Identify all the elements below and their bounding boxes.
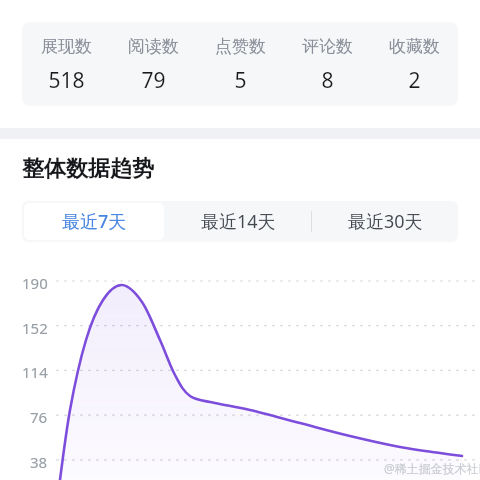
button[interactable]: 阅读数	[110, 22, 197, 95]
button[interactable]: 展现数	[22, 22, 458, 106]
staticText: 76	[30, 407, 48, 427]
staticText: 最近14天	[201, 209, 276, 234]
staticText: 38	[30, 452, 48, 472]
staticText: 114	[22, 362, 48, 382]
button[interactable]: 展现数	[22, 22, 110, 95]
staticText: 8	[321, 66, 334, 95]
staticText: 阅读数	[128, 36, 179, 57]
button[interactable]: 收藏数	[371, 22, 458, 95]
staticText: 收藏数	[389, 36, 440, 57]
staticText: 2	[408, 66, 421, 95]
staticText: 评论数	[302, 36, 353, 57]
button[interactable]: 最近7天	[24, 203, 164, 240]
staticText: 152	[22, 318, 48, 338]
button[interactable]: 最近14天	[168, 201, 308, 242]
staticText: 518	[48, 66, 85, 95]
staticText: 最近30天	[348, 209, 423, 234]
staticText: 190	[22, 273, 48, 293]
staticText: @稀土掘金技术社区	[384, 460, 480, 476]
button[interactable]: 点赞数	[197, 22, 284, 95]
staticText: 79	[141, 66, 166, 95]
staticText: 展现数	[41, 36, 92, 57]
staticText: 最近7天	[62, 209, 127, 234]
button[interactable]: 最近30天	[314, 201, 456, 242]
button[interactable]: 评论数	[284, 22, 371, 95]
staticText: 点赞数	[215, 36, 266, 57]
staticText: 5	[234, 66, 247, 95]
staticText: 整体数据趋势	[22, 155, 154, 183]
